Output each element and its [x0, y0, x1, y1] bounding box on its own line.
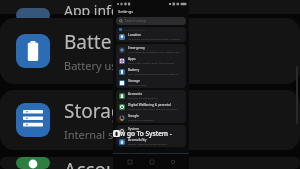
other: Storage [16, 103, 50, 137]
button[interactable]: Location [116, 31, 186, 42]
staticText: Accounts [128, 92, 142, 96]
other: Accounts [119, 93, 125, 99]
button[interactable]: App info, Defa [0, 0, 300, 14]
staticText: Google [128, 114, 139, 118]
button[interactable]: Recents [125, 157, 134, 166]
staticText: Emergency [128, 46, 145, 50]
other: Search [119, 19, 123, 23]
other: Location [119, 34, 125, 40]
staticText: w go To System - update [120, 129, 189, 138]
button[interactable]: Storage [116, 77, 186, 88]
staticText: App info, Defa [64, 1, 158, 15]
button[interactable]: Google [116, 112, 186, 123]
staticText: Settings [118, 9, 134, 14]
other: Battery [119, 69, 125, 75]
staticText: Battery [64, 29, 129, 55]
other: Accessibility [119, 139, 125, 145]
staticText: Accessibility [128, 138, 147, 142]
staticText: Recent apps, Default apps, Special acces… [128, 61, 175, 64]
staticText: Languages, gestures, time, backup [128, 131, 168, 134]
button[interactable]: Search [116, 17, 186, 25]
button[interactable]: Emergency [116, 44, 186, 55]
other: Digital Wellbeing & parental controls [119, 104, 125, 110]
other: Accounts [16, 157, 50, 169]
staticText: 28% - Battery usage and restrictions, Ba… [128, 72, 183, 75]
staticText: Display, interaction, audio controls [128, 142, 167, 145]
button[interactable]: Battery [116, 66, 186, 77]
staticText: Apps [128, 57, 136, 61]
button[interactable]: Battery [0, 18, 300, 84]
button[interactable]: Apps [116, 55, 186, 66]
other: Google [119, 115, 125, 121]
staticText: Screen time, app timers, bedtime schedul… [128, 107, 178, 110]
staticText: Crash detection, Emergency SOS, Medical … [128, 50, 180, 53]
button[interactable]: Accounts [0, 157, 300, 169]
staticText: Internal storage [128, 83, 147, 86]
staticText: Search settings [125, 19, 147, 23]
other: Emergency [119, 47, 125, 53]
button[interactable]: Accessibility [116, 136, 186, 147]
staticText: No recents. Recent locations request, Lo… [128, 37, 183, 40]
staticText: Battery usage [64, 58, 136, 73]
other: Apps [119, 58, 125, 64]
staticText: Sync and backup accounts [128, 96, 158, 99]
staticText: Digital Wellbeing & parental controls [128, 103, 183, 107]
button[interactable]: Storage [0, 90, 300, 150]
staticText: Connected devices [124, 28, 146, 31]
staticText: Storage [64, 98, 134, 124]
button[interactable]: Home [147, 157, 156, 166]
button[interactable]: Connected devices [116, 27, 186, 31]
other: Battery [16, 34, 50, 68]
staticText: Services & preferences [128, 118, 154, 121]
button[interactable]: System [116, 125, 186, 136]
staticText: Internal storag [64, 127, 142, 142]
other: Storage [119, 80, 125, 86]
staticText: Accounts [64, 157, 146, 169]
button[interactable]: Digital Wellbeing & parental controls [116, 101, 186, 112]
button[interactable]: Accounts [116, 90, 186, 101]
other: Hand pointer [113, 130, 120, 137]
button[interactable]: Back [168, 157, 177, 166]
staticText: Storage [128, 79, 140, 83]
staticText: Location [128, 33, 142, 37]
staticText: System [128, 127, 140, 131]
other: System [119, 128, 125, 134]
staticText: Battery [128, 68, 140, 72]
